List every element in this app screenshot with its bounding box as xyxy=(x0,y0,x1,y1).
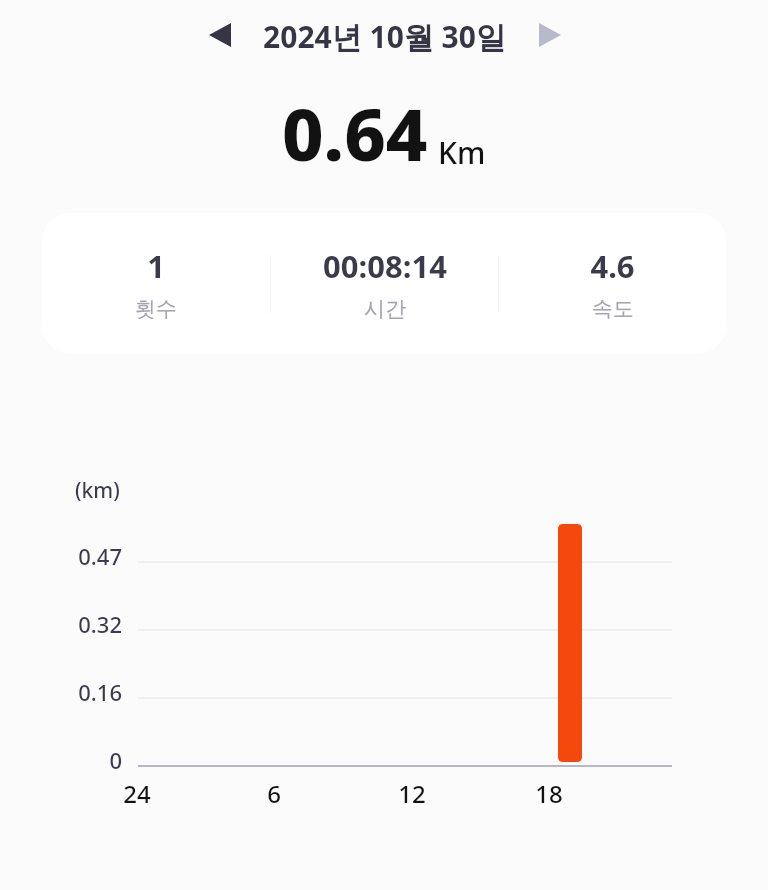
staticText: 속도 xyxy=(592,296,634,322)
staticText: 4.6 xyxy=(590,245,635,287)
staticText: 6 xyxy=(267,777,281,810)
staticText: 0.16 xyxy=(78,677,122,707)
staticText: 0.32 xyxy=(78,609,122,639)
staticText: 0.47 xyxy=(78,541,122,571)
button[interactable]: Next day xyxy=(528,13,572,57)
staticText: 0.64 xyxy=(282,84,428,182)
button[interactable]: 1 xyxy=(42,213,726,354)
staticText: 00:08:14 xyxy=(323,245,447,287)
staticText: 18 xyxy=(535,777,563,810)
staticText: 1 xyxy=(147,245,165,287)
staticText: 12 xyxy=(398,777,426,810)
staticText: 횟수 xyxy=(135,296,177,322)
staticText: 24 xyxy=(123,777,151,810)
staticText: 시간 xyxy=(364,296,406,322)
button[interactable]: Previous day xyxy=(198,13,242,57)
staticText: Km xyxy=(438,132,486,173)
button[interactable]: 2024년 10월 30일 xyxy=(263,16,506,57)
staticText: (km) xyxy=(75,476,120,505)
staticText: 0 xyxy=(109,745,122,775)
